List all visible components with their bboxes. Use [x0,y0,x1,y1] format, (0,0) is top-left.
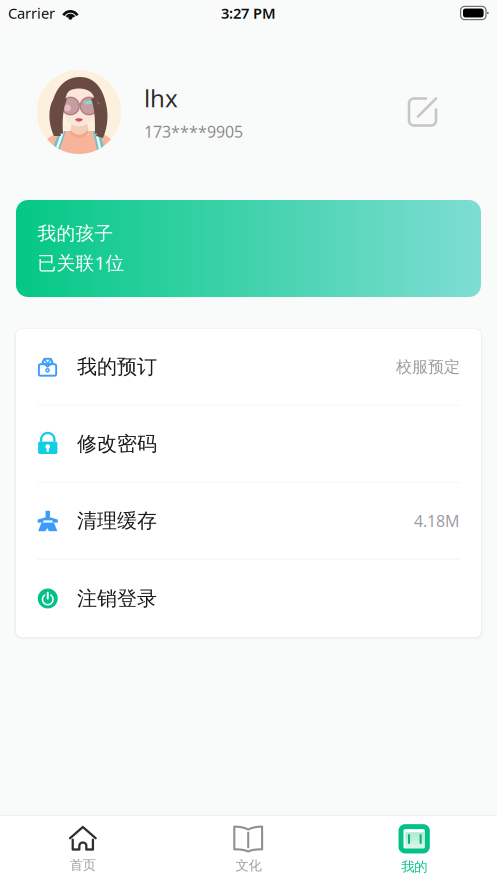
staticText: 我的 [401,859,427,875]
staticText: 4.18M [414,510,460,531]
staticText: Carrier [8,3,55,23]
staticText: 注销登录 [77,586,157,611]
button[interactable]: 我的孩子 [16,200,481,297]
staticText: 3:27 PM [221,3,276,23]
button[interactable]: lhx [0,36,497,188]
button[interactable]: 我的预订 [16,329,481,406]
button[interactable]: 文化 [166,825,331,874]
staticText: 我的预订 [77,355,157,379]
button[interactable]: 修改密码 [16,406,481,483]
staticText: 校服预定 [396,357,460,377]
staticText: 清理缓存 [77,509,157,533]
staticText: 已关联1位 [37,250,124,275]
button[interactable]: 清理缓存 [16,483,481,560]
staticText: 修改密码 [77,432,157,456]
staticText: 首页 [70,857,96,873]
button[interactable]: 我的 [331,824,497,875]
button[interactable]: 注销登录 [16,560,481,637]
staticText: 173****9905 [144,121,243,142]
staticText: lhx [144,82,178,114]
staticText: 文化 [235,857,261,874]
staticText: 我的孩子 [37,222,113,245]
button[interactable]: 首页 [0,826,166,873]
